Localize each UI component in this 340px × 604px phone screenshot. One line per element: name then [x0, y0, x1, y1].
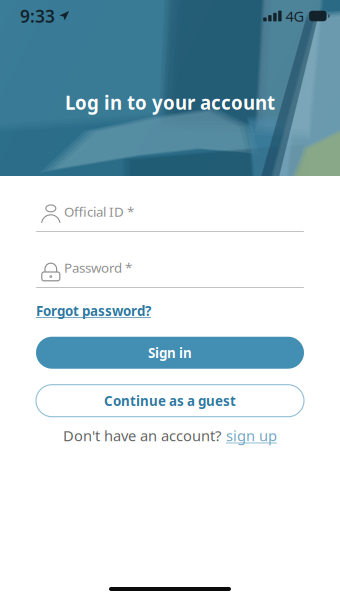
staticText: 9:33 [20, 4, 55, 27]
staticText: Log in to your account [65, 90, 275, 115]
staticText: Don't have an account? [63, 426, 221, 445]
staticText: Forgot password? [36, 302, 151, 320]
staticText: Continue as a guest [104, 392, 236, 410]
button[interactable]: Continue as a guest [36, 385, 304, 417]
button[interactable]: Forgot password? [36, 302, 151, 320]
button[interactable]: sign up [226, 426, 277, 445]
staticText: Sign in [148, 344, 192, 362]
staticText: Official ID * [64, 203, 134, 220]
staticText: 4G [286, 6, 305, 26]
staticText: Password * [64, 259, 132, 276]
button[interactable]: Sign in [36, 337, 304, 369]
staticText: sign up [226, 426, 277, 445]
